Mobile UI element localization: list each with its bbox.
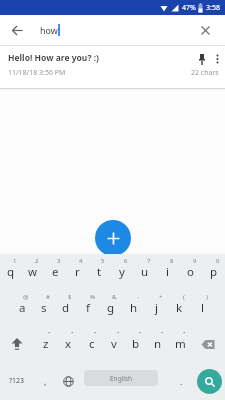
staticText: c — [89, 336, 95, 352]
button[interactable]: o — [179, 254, 202, 290]
staticText: s — [41, 300, 47, 316]
button[interactable]: x — [57, 326, 80, 362]
staticText: r — [75, 264, 80, 280]
staticText: • — [48, 329, 51, 337]
staticText: z — [43, 336, 49, 352]
staticText: + — [159, 293, 163, 301]
button[interactable] — [193, 362, 225, 400]
button[interactable]: r — [66, 254, 88, 290]
staticText: 3:58 — [206, 3, 220, 13]
button[interactable]: u — [133, 254, 156, 290]
button[interactable]: w — [22, 254, 44, 290]
button[interactable] — [216, 54, 219, 65]
staticText: a — [19, 300, 26, 316]
button[interactable]: l — [191, 290, 214, 326]
button[interactable]: j — [145, 290, 168, 326]
staticText: 8 — [170, 257, 174, 265]
button[interactable]: h — [122, 290, 145, 326]
staticText: e — [52, 264, 59, 280]
button[interactable]: f — [77, 290, 99, 326]
staticText: • — [71, 329, 74, 337]
staticText: 3 — [57, 257, 61, 265]
staticText: 22 chars — [191, 68, 219, 78]
staticText: # — [46, 293, 50, 301]
staticText: • — [183, 329, 186, 337]
staticText: @ — [23, 293, 29, 301]
button[interactable]: q — [0, 254, 22, 290]
button[interactable]: m — [169, 326, 191, 362]
staticText: m — [175, 336, 186, 352]
staticText: p — [210, 264, 218, 280]
staticText: i — [166, 264, 169, 280]
button[interactable]: e — [44, 254, 66, 290]
staticText: % — [90, 293, 95, 301]
staticText: ?123 — [9, 376, 25, 386]
staticText: j — [155, 300, 158, 316]
staticText: q — [7, 264, 15, 280]
staticText: w — [28, 264, 38, 280]
button[interactable] — [0, 326, 34, 362]
staticText: 9 — [193, 257, 197, 265]
button[interactable] — [197, 54, 207, 65]
button[interactable]: . — [170, 362, 193, 400]
staticText: 4 — [79, 257, 83, 265]
staticText: • — [94, 329, 97, 337]
button[interactable] — [190, 15, 220, 45]
staticText: u — [141, 264, 149, 280]
button[interactable]: t — [88, 254, 110, 290]
staticText: 0 — [216, 257, 220, 265]
button[interactable]: n — [147, 326, 169, 362]
staticText: d — [62, 300, 70, 316]
button[interactable]: i — [156, 254, 179, 290]
staticText: k — [176, 300, 183, 316]
staticText: ( — [183, 293, 185, 301]
button[interactable]: d — [55, 290, 77, 326]
button[interactable]: , — [34, 362, 57, 400]
button[interactable]: g — [99, 290, 122, 326]
staticText: 1 — [13, 257, 17, 265]
staticText: b — [132, 336, 140, 352]
staticText: y — [119, 264, 125, 280]
button[interactable]: s — [33, 290, 55, 326]
staticText: . — [180, 375, 183, 387]
staticText: & — [112, 293, 117, 301]
staticText: • — [161, 329, 164, 337]
staticText: n — [154, 336, 162, 352]
staticText: t — [97, 264, 102, 280]
button[interactable]: a — [11, 290, 33, 326]
staticText: g — [107, 300, 115, 316]
staticText: f — [86, 300, 90, 316]
staticText: - — [137, 293, 139, 301]
button[interactable]: k — [168, 290, 191, 326]
staticText: , — [44, 375, 47, 387]
staticText: h — [130, 300, 138, 316]
staticText: 6 — [124, 257, 128, 265]
button[interactable]: z — [34, 326, 57, 362]
button[interactable]: c — [80, 326, 103, 362]
staticText: l — [201, 300, 204, 316]
button[interactable] — [191, 326, 225, 362]
staticText: 47% — [182, 3, 196, 13]
button[interactable] — [95, 220, 131, 256]
staticText: • — [139, 329, 142, 337]
button[interactable]: English — [80, 362, 170, 400]
staticText: 2 — [35, 257, 39, 265]
button[interactable]: v — [103, 326, 125, 362]
staticText: x — [65, 336, 72, 352]
staticText: 11/18/18 3:56 PM — [8, 68, 66, 78]
button[interactable]: y — [110, 254, 133, 290]
staticText: 7 — [147, 257, 151, 265]
button[interactable]: ?123 — [0, 362, 34, 400]
button[interactable]: b — [125, 326, 147, 362]
staticText: how — [40, 24, 58, 36]
staticText: 5 — [101, 257, 105, 265]
button[interactable]: p — [202, 254, 225, 290]
staticText: • — [117, 329, 120, 337]
button[interactable] — [57, 362, 80, 400]
button[interactable]: Hello! How are you? :) — [0, 46, 225, 88]
staticText: $ — [68, 293, 72, 301]
staticText: v — [111, 336, 117, 352]
button[interactable] — [0, 15, 30, 45]
staticText: ) — [206, 293, 208, 301]
staticText: Hello! How are you? :) — [8, 52, 99, 64]
